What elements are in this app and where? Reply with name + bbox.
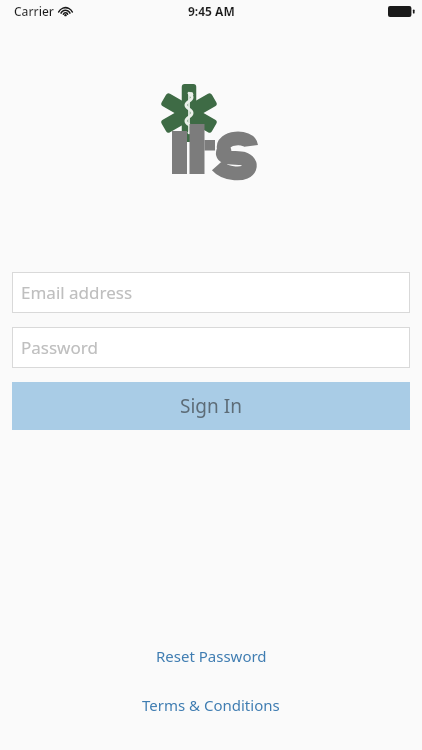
staticText: Password [21, 336, 98, 359]
staticText: Email address [21, 281, 133, 304]
button[interactable]: Terms & Conditions [0, 686, 422, 724]
staticText: Reset Password [156, 646, 267, 666]
button[interactable]: Sign In [12, 382, 410, 430]
button[interactable]: Password [12, 327, 410, 368]
button[interactable]: Reset Password [0, 637, 422, 675]
other: ITS logo [160, 84, 218, 142]
staticText: Carrier [14, 3, 54, 19]
staticText: 9:45 AM [188, 3, 235, 19]
button[interactable]: Email address [12, 272, 410, 313]
staticText: Sign In [180, 393, 242, 419]
staticText: Terms & Conditions [142, 695, 280, 715]
